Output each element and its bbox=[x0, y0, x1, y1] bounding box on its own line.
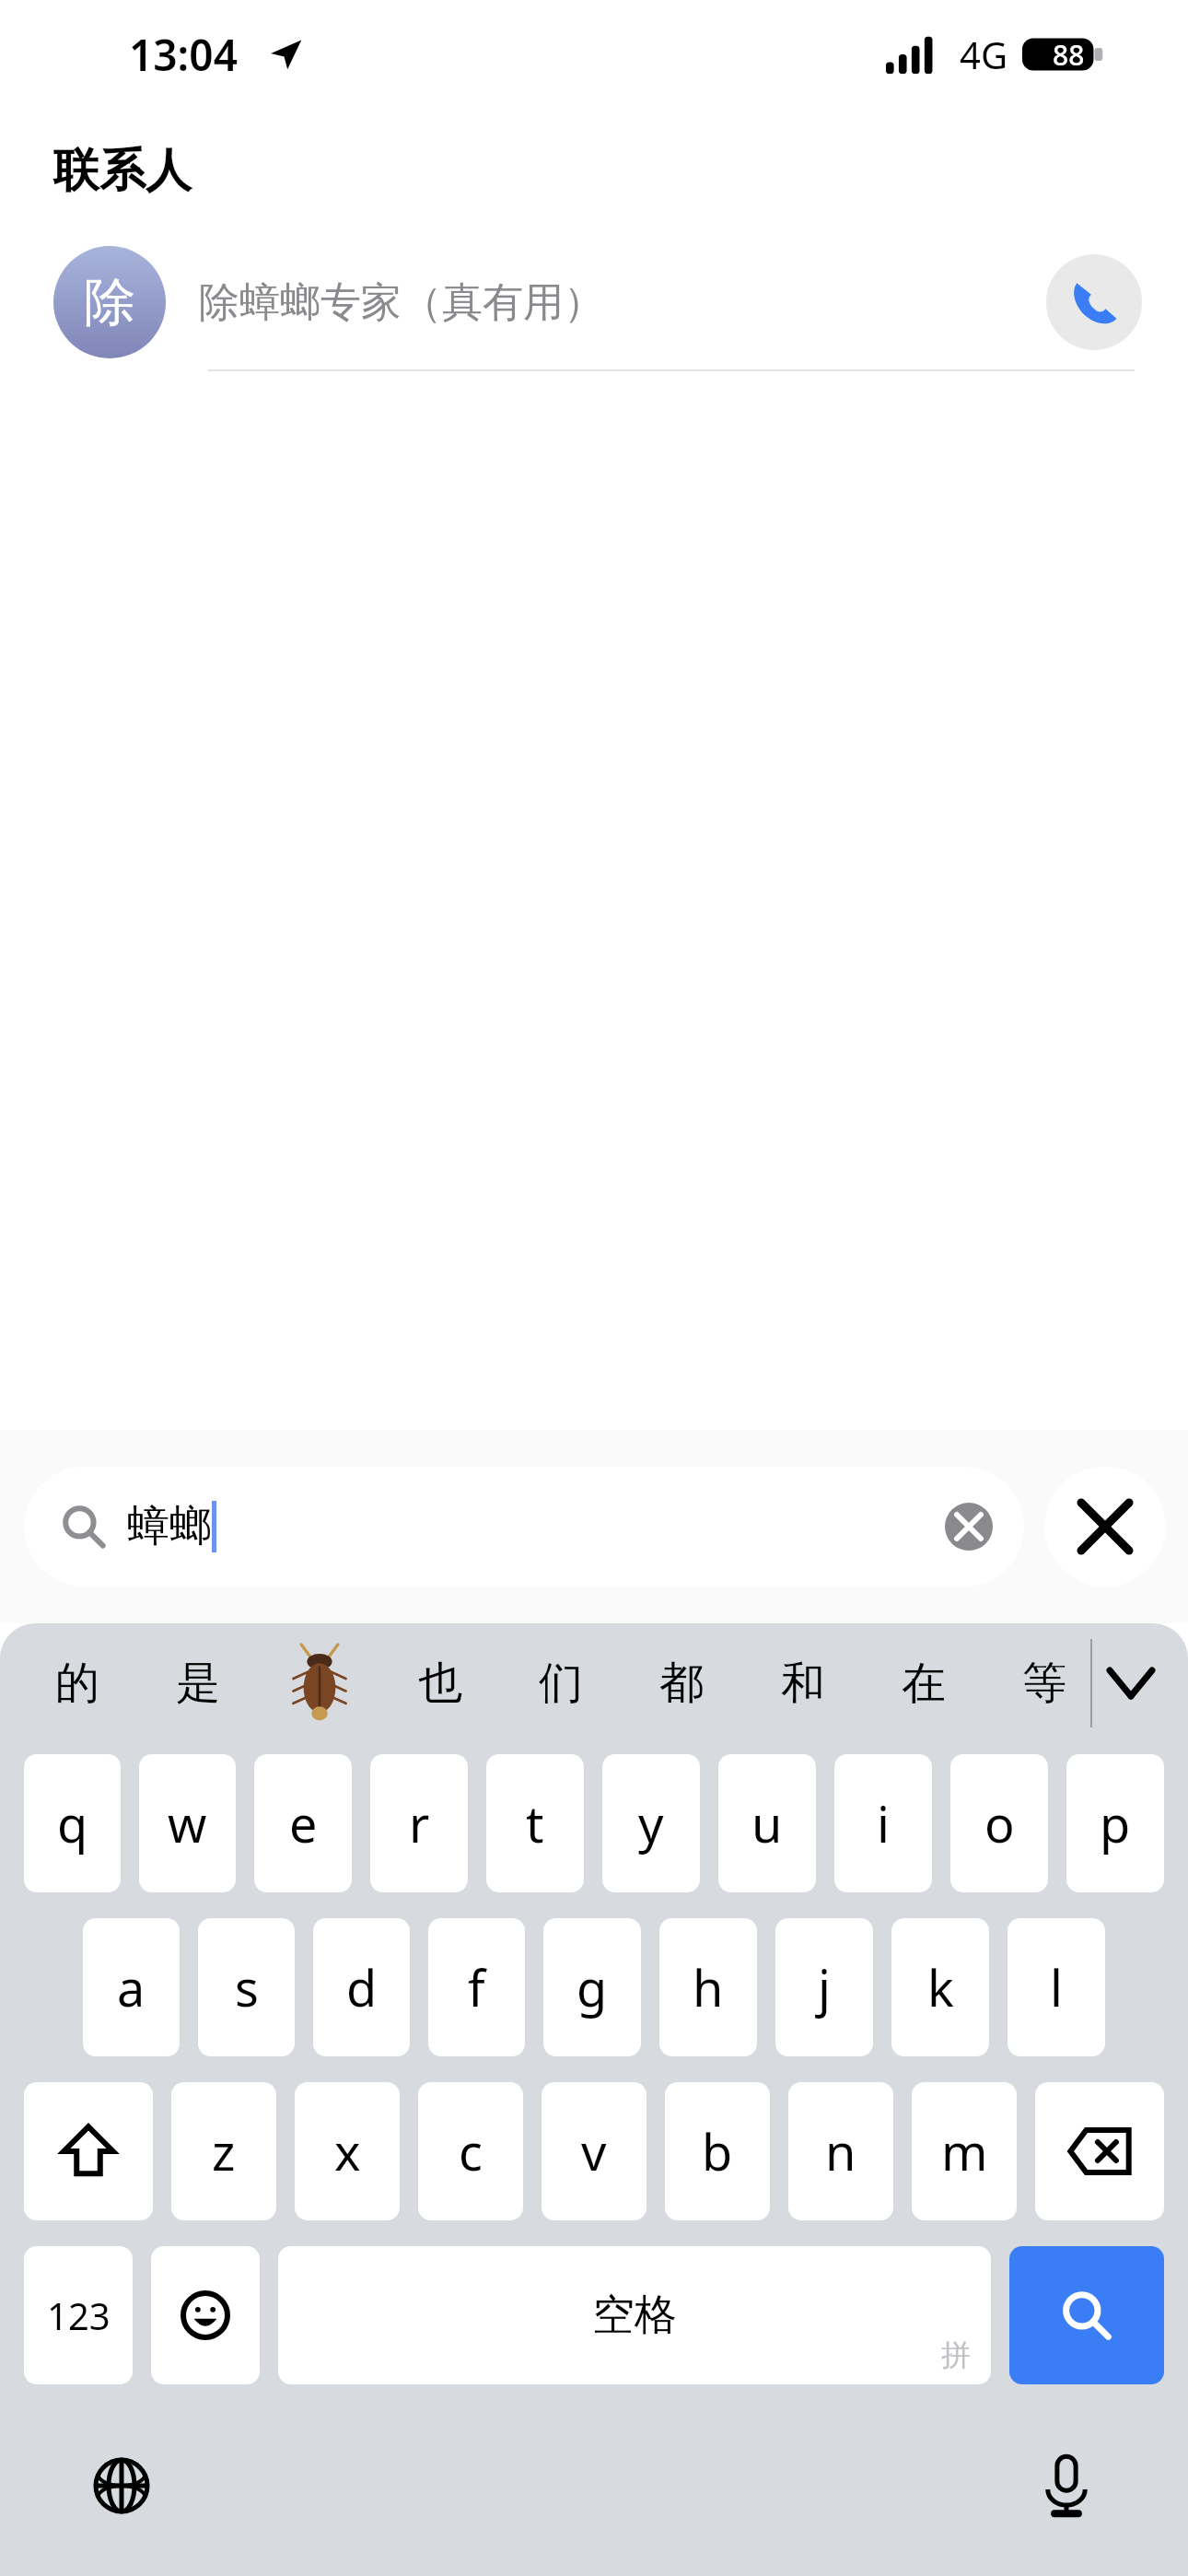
staticText: n bbox=[825, 2117, 856, 2185]
button[interactable]: y bbox=[602, 1754, 700, 1892]
button[interactable]: u bbox=[718, 1754, 816, 1892]
staticText: s bbox=[235, 1953, 259, 2021]
button[interactable]: d bbox=[313, 1918, 410, 2056]
button[interactable]: Shift bbox=[24, 2082, 153, 2220]
button[interactable]: Voice input bbox=[1024, 2443, 1109, 2528]
button[interactable]: r bbox=[370, 1754, 468, 1892]
button[interactable]: Emoji bbox=[151, 2246, 260, 2384]
staticText: 是 bbox=[176, 1656, 220, 1711]
button[interactable]: Change keyboard language bbox=[79, 2443, 164, 2528]
staticText: 的 bbox=[55, 1656, 99, 1711]
button[interactable]: 是 bbox=[154, 1633, 242, 1734]
staticText: v bbox=[581, 2117, 607, 2185]
staticText: 也 bbox=[418, 1656, 462, 1711]
button[interactable]: 们 bbox=[517, 1633, 605, 1734]
staticText: 在 bbox=[902, 1656, 946, 1711]
staticText: 蟑螂 bbox=[127, 1500, 212, 1553]
staticText: 13:04 bbox=[129, 26, 238, 84]
button[interactable]: 和 bbox=[759, 1633, 847, 1734]
staticText: q bbox=[57, 1789, 88, 1857]
button[interactable]: q bbox=[24, 1754, 121, 1892]
staticText: 和 bbox=[781, 1656, 825, 1711]
staticText: l bbox=[1050, 1953, 1063, 2021]
staticText: c bbox=[459, 2117, 483, 2185]
button[interactable]: Collapse candidates bbox=[1094, 1646, 1168, 1720]
button[interactable]: b bbox=[665, 2082, 770, 2220]
button[interactable]: s bbox=[198, 1918, 295, 2056]
staticText: t bbox=[526, 1789, 544, 1857]
staticText: o bbox=[984, 1789, 1015, 1857]
button[interactable]: i bbox=[834, 1754, 932, 1892]
staticText: b bbox=[702, 2117, 733, 2185]
button[interactable]: 在 bbox=[879, 1633, 968, 1734]
button[interactable]: 都 bbox=[637, 1633, 726, 1734]
staticText: g bbox=[577, 1953, 608, 2021]
button[interactable]: 蟑螂 bbox=[24, 1467, 1024, 1587]
staticText: i bbox=[877, 1789, 890, 1857]
staticText: p bbox=[1100, 1789, 1131, 1857]
staticText: f bbox=[468, 1953, 485, 2021]
button[interactable]: n bbox=[788, 2082, 893, 2220]
button[interactable]: g bbox=[543, 1918, 641, 2056]
button[interactable] bbox=[275, 1633, 364, 1734]
button[interactable]: Close search bbox=[1044, 1467, 1166, 1587]
button[interactable]: t bbox=[486, 1754, 584, 1892]
button[interactable]: Clear text bbox=[945, 1503, 993, 1551]
staticText: x bbox=[334, 2117, 361, 2185]
staticText: 等 bbox=[1022, 1656, 1066, 1711]
button[interactable]: m bbox=[912, 2082, 1017, 2220]
staticText: a bbox=[117, 1953, 146, 2021]
button[interactable]: j bbox=[775, 1918, 873, 2056]
staticText: 88 bbox=[1053, 36, 1085, 74]
staticText: k bbox=[927, 1953, 954, 2021]
staticText: e bbox=[289, 1789, 318, 1857]
staticText: y bbox=[638, 1789, 664, 1857]
staticText: 除蟑螂专家（真有用） bbox=[199, 277, 1035, 328]
staticText: m bbox=[941, 2117, 988, 2185]
button[interactable]: 123 bbox=[24, 2246, 133, 2384]
staticText: z bbox=[212, 2117, 236, 2185]
button[interactable]: k bbox=[891, 1918, 989, 2056]
button[interactable]: Backspace bbox=[1035, 2082, 1164, 2220]
staticText: 4G bbox=[960, 29, 1007, 79]
button[interactable]: 也 bbox=[396, 1633, 484, 1734]
button[interactable]: f bbox=[428, 1918, 525, 2056]
button[interactable]: v bbox=[542, 2082, 646, 2220]
button[interactable]: h bbox=[659, 1918, 757, 2056]
button[interactable]: p bbox=[1066, 1754, 1164, 1892]
button[interactable]: l bbox=[1007, 1918, 1105, 2056]
staticText: h bbox=[693, 1953, 724, 2021]
staticText: 拼 bbox=[941, 2336, 971, 2373]
button[interactable]: w bbox=[139, 1754, 236, 1892]
button[interactable]: 空格 bbox=[278, 2246, 991, 2384]
staticText: 们 bbox=[539, 1656, 583, 1711]
button[interactable]: a bbox=[83, 1918, 180, 2056]
button[interactable]: 除 bbox=[0, 235, 1188, 369]
button[interactable]: o bbox=[950, 1754, 1048, 1892]
staticText: u bbox=[751, 1789, 783, 1857]
staticText: 都 bbox=[659, 1656, 704, 1711]
button[interactable]: Search bbox=[1009, 2246, 1164, 2384]
button[interactable]: c bbox=[418, 2082, 523, 2220]
staticText: 空格 bbox=[592, 2289, 677, 2342]
staticText: d bbox=[346, 1953, 378, 2021]
staticText: r bbox=[409, 1789, 430, 1857]
button[interactable]: e bbox=[254, 1754, 352, 1892]
staticText: j bbox=[818, 1953, 831, 2021]
button[interactable]: Call bbox=[1046, 254, 1142, 350]
button[interactable]: x bbox=[295, 2082, 400, 2220]
button[interactable]: 的 bbox=[33, 1633, 122, 1734]
button[interactable]: z bbox=[171, 2082, 276, 2220]
staticText: 123 bbox=[47, 2290, 111, 2340]
staticText: 联系人 bbox=[53, 142, 192, 200]
staticText: 除 bbox=[84, 270, 135, 335]
button[interactable]: 等 bbox=[1000, 1633, 1089, 1734]
staticText: w bbox=[168, 1789, 207, 1857]
